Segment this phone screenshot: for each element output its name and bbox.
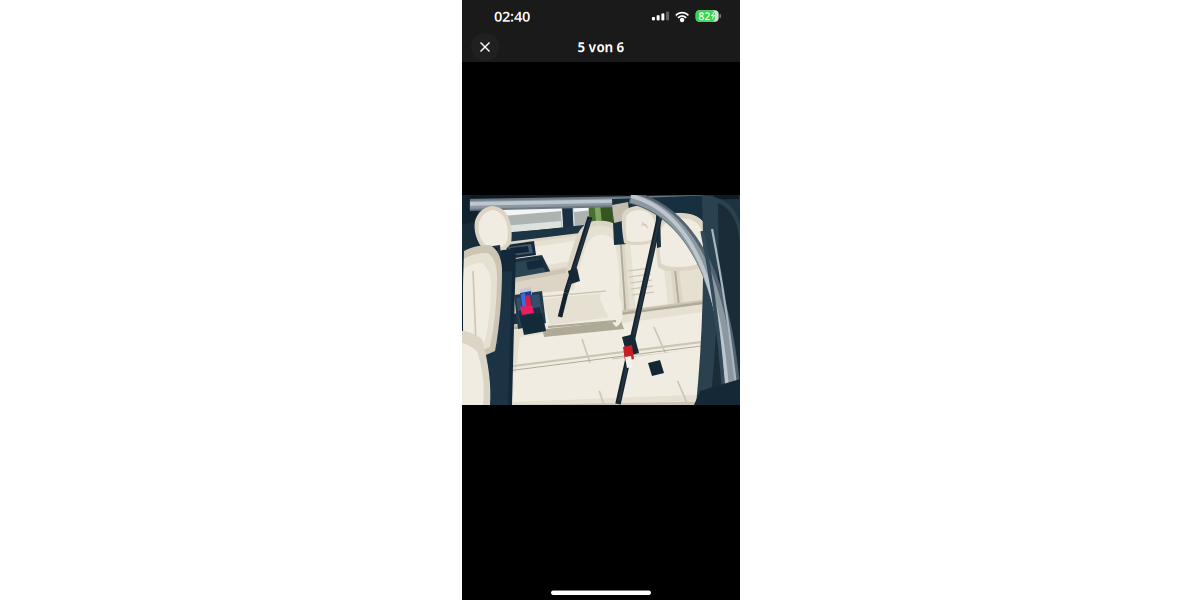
button[interactable]: Close xyxy=(465,32,505,62)
staticText: 82 xyxy=(698,9,710,23)
staticText: 02:40 xyxy=(494,6,530,26)
staticText: 5 von 6 xyxy=(577,38,624,56)
